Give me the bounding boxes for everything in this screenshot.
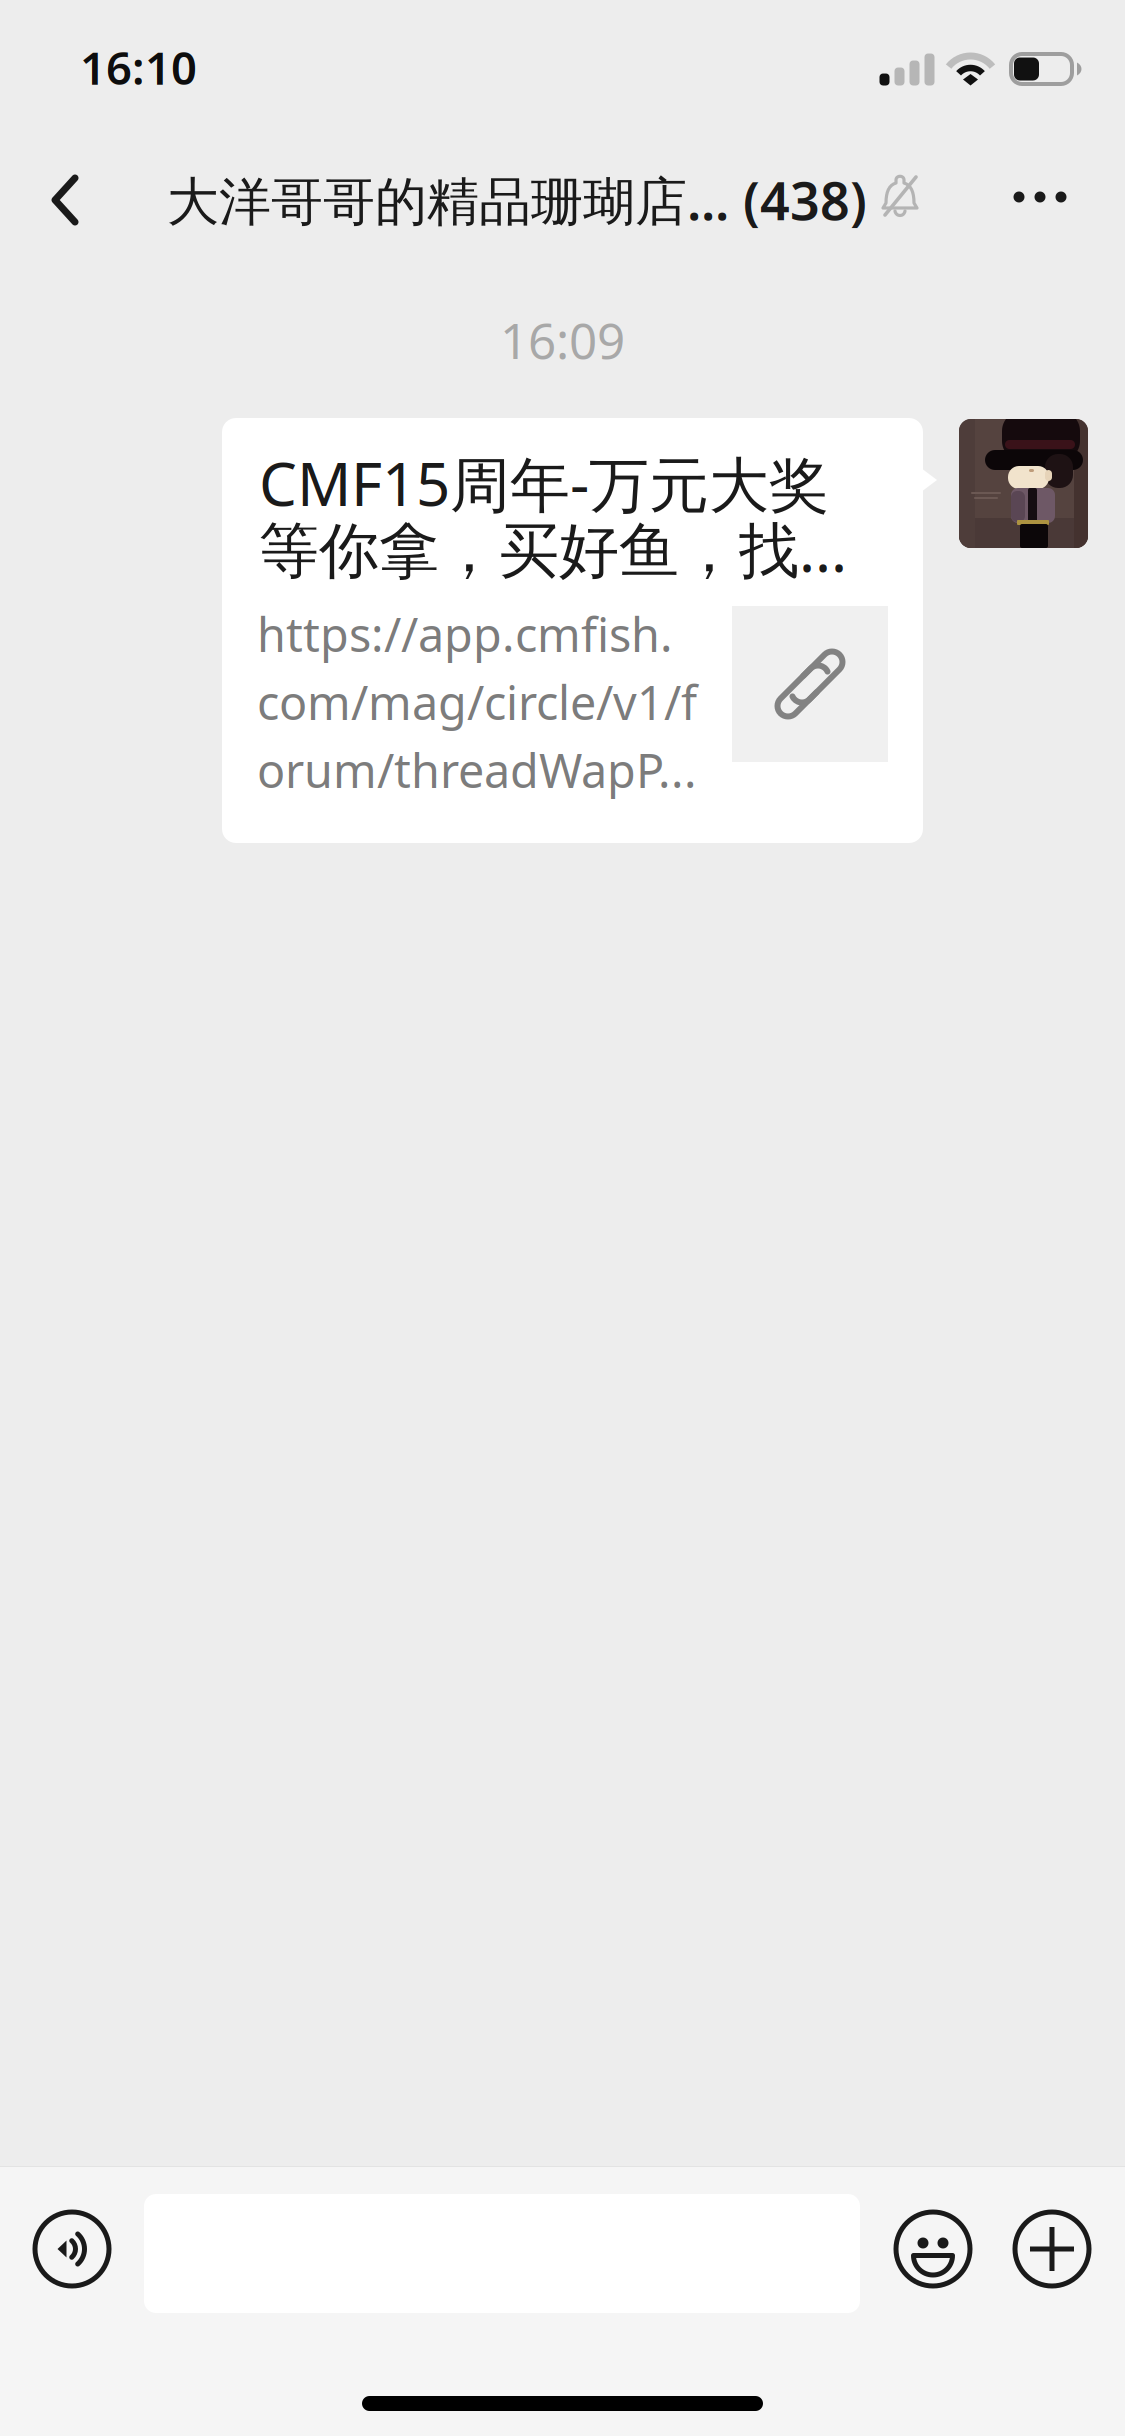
button[interactable]: Voice message (17, 2194, 127, 2304)
staticText: https://app.cmfish. com/mag/circle/v1/f … (257, 603, 697, 801)
button[interactable]: CMF15周年-万元大奖 (222, 418, 923, 843)
button[interactable]: Profile photo (959, 419, 1088, 548)
button[interactable]: More options (997, 2194, 1107, 2304)
button[interactable]: More (985, 147, 1095, 247)
staticText: 大洋哥哥的精品珊瑚店... (438) (167, 165, 867, 235)
staticText: 等你拿，买好鱼，找... (259, 509, 847, 589)
staticText: 16:10 (80, 37, 197, 97)
button[interactable]: Emoji (878, 2194, 988, 2304)
staticText: CMF15周年-万元大奖 (259, 443, 829, 523)
staticText: 16:09 (500, 307, 625, 372)
button[interactable]: Back (17, 150, 113, 250)
